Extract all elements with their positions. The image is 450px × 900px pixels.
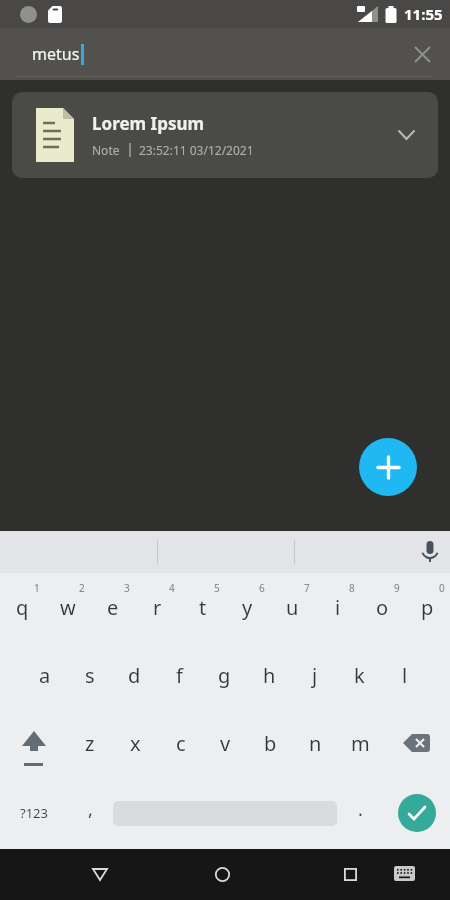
- staticText: s: [85, 662, 95, 689]
- staticText: l: [402, 662, 408, 689]
- button[interactable]: [383, 709, 450, 777]
- button[interactable]: d: [112, 641, 157, 709]
- button[interactable]: k: [337, 641, 382, 709]
- staticText: 0: [439, 581, 445, 595]
- button[interactable]: i: [315, 573, 360, 641]
- button[interactable]: m: [338, 709, 383, 777]
- button[interactable]: [385, 854, 423, 892]
- staticText: u: [286, 594, 299, 621]
- button[interactable]: [386, 115, 426, 155]
- button[interactable]: [359, 438, 417, 496]
- button[interactable]: g: [202, 641, 247, 709]
- button[interactable]: v: [203, 709, 248, 777]
- button[interactable]: r: [135, 573, 180, 641]
- button[interactable]: a: [22, 641, 67, 709]
- button[interactable]: [383, 777, 450, 849]
- button[interactable]: q: [0, 573, 45, 641]
- staticText: Lorem Ipsum: [92, 112, 205, 135]
- staticText: metus: [32, 43, 80, 65]
- staticText: n: [309, 730, 322, 757]
- button[interactable]: f: [157, 641, 202, 709]
- staticText: k: [354, 662, 365, 689]
- staticText: o: [376, 594, 389, 621]
- button[interactable]: c: [158, 709, 203, 777]
- staticText: 23:52:11 03/12/2021: [139, 142, 254, 158]
- staticText: t: [199, 594, 207, 621]
- button[interactable]: ?123: [0, 777, 67, 849]
- staticText: q: [16, 594, 29, 621]
- staticText: z: [85, 730, 95, 757]
- button[interactable]: [0, 709, 67, 777]
- button[interactable]: h: [247, 641, 292, 709]
- staticText: y: [242, 594, 253, 621]
- staticText: w: [60, 594, 76, 621]
- staticText: g: [218, 662, 231, 689]
- button[interactable]: [330, 854, 370, 894]
- button[interactable]: n: [293, 709, 338, 777]
- staticText: c: [176, 730, 186, 757]
- button[interactable]: p: [405, 573, 450, 641]
- button[interactable]: u: [270, 573, 315, 641]
- staticText: 9: [394, 581, 400, 595]
- staticText: d: [128, 662, 141, 689]
- staticText: ,: [88, 797, 93, 822]
- staticText: 3: [124, 581, 130, 595]
- staticText: 8: [349, 581, 355, 595]
- button[interactable]: y: [225, 573, 270, 641]
- staticText: .: [358, 797, 363, 822]
- button[interactable]: t: [180, 573, 225, 641]
- staticText: e: [107, 594, 119, 621]
- staticText: 2: [79, 581, 85, 595]
- button[interactable]: [202, 854, 242, 894]
- staticText: r: [153, 594, 162, 621]
- button[interactable]: b: [248, 709, 293, 777]
- button[interactable]: l: [382, 641, 427, 709]
- staticText: 1: [34, 581, 40, 595]
- button[interactable]: ,: [67, 777, 113, 849]
- button[interactable]: o: [360, 573, 405, 641]
- staticText: 11:55: [404, 4, 443, 24]
- staticText: h: [263, 662, 276, 689]
- staticText: x: [130, 730, 141, 757]
- staticText: i: [335, 594, 341, 621]
- staticText: p: [421, 594, 434, 621]
- button[interactable]: j: [292, 641, 337, 709]
- staticText: 5: [214, 581, 220, 595]
- button[interactable]: [413, 535, 447, 569]
- button[interactable]: [402, 34, 442, 74]
- staticText: 7: [304, 581, 310, 595]
- button[interactable]: x: [113, 709, 158, 777]
- staticText: 6: [259, 581, 265, 595]
- button[interactable]: Lorem Ipsum: [12, 92, 438, 178]
- button[interactable]: z: [67, 709, 113, 777]
- staticText: ?123: [20, 804, 48, 822]
- staticText: a: [39, 662, 51, 689]
- button[interactable]: e: [90, 573, 135, 641]
- staticText: Note: [92, 142, 120, 158]
- button[interactable]: .: [337, 777, 383, 849]
- button[interactable]: [113, 777, 337, 849]
- button[interactable]: s: [67, 641, 112, 709]
- staticText: v: [220, 730, 231, 757]
- button[interactable]: [80, 854, 120, 894]
- staticText: 4: [169, 581, 175, 595]
- staticText: j: [312, 662, 318, 689]
- button[interactable]: w: [45, 573, 90, 641]
- staticText: m: [351, 730, 370, 757]
- staticText: f: [176, 662, 183, 689]
- staticText: b: [264, 730, 277, 757]
